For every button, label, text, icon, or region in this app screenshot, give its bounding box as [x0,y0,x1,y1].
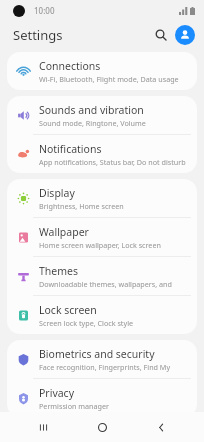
button[interactable]: Account [175,25,195,45]
staticText: Brightness, Home screen [39,201,124,211]
staticText: 10:00 [34,5,55,16]
button[interactable]: Search [150,24,172,46]
staticText: Sound mode, Ringtone, Volume [39,118,146,128]
staticText: Downloadable themes, wallpapers, and ico… [39,279,191,289]
button[interactable]: Lock screen [7,296,197,334]
button[interactable]: Themes [7,257,197,295]
staticText: Lock screen [39,303,97,317]
staticText: Settings [13,26,63,44]
staticText: Permission manager [39,401,110,411]
staticText: Display [39,186,75,200]
button[interactable]: Recents [27,412,59,442]
button[interactable]: Sounds and vibration [7,96,197,134]
staticText: Wallpaper [39,225,89,239]
staticText: Wi-Fi, Bluetooth, Flight mode, Data usag… [39,74,179,84]
button[interactable]: Back [145,412,177,442]
button[interactable]: Connections [7,52,197,90]
staticText: Home screen wallpaper, Lock screen wallp… [39,240,191,250]
button[interactable]: Home [86,412,118,442]
staticText: App notifications, Status bar, Do not di… [39,157,186,167]
button[interactable]: Notifications [7,135,197,173]
staticText: Sounds and vibration [39,103,144,117]
staticText: Notifications [39,142,102,156]
button[interactable]: Biometrics and security [7,340,197,378]
staticText: Face recognition, Fingerprints, Find My … [39,362,191,372]
button[interactable]: Wallpaper [7,218,197,256]
staticText: Biometrics and security [39,347,155,361]
button[interactable]: Privacy [7,379,197,417]
staticText: Themes [39,264,79,278]
button[interactable]: Display [7,179,197,217]
staticText: Connections [39,59,101,73]
staticText: Screen lock type, Clock style [39,318,134,328]
staticText: Privacy [39,386,75,400]
